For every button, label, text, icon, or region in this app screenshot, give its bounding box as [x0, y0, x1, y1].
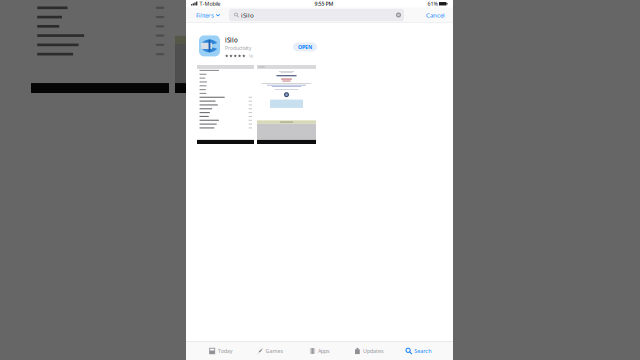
staticText: iSilo [225, 36, 238, 44]
staticText: 9:55 PM [314, 0, 333, 7]
staticText: Today [218, 347, 233, 355]
staticText: Filters [196, 11, 214, 19]
button[interactable]: Today [196, 342, 245, 360]
staticText: Updates [363, 347, 384, 355]
staticText: Search [414, 347, 431, 355]
button[interactable]: Apps [295, 342, 344, 360]
staticText: Apps [318, 347, 330, 355]
button[interactable]: Search [394, 342, 443, 360]
staticText: Productivity [225, 45, 251, 51]
button[interactable]: Clear search text [394, 10, 403, 19]
staticText: T-Mobile [199, 0, 220, 7]
button[interactable]: Games [245, 342, 295, 360]
button[interactable]: OPEN [293, 42, 317, 51]
staticText: 14 [248, 53, 252, 59]
staticText: Cancel [426, 11, 445, 19]
staticText: 61% [427, 0, 437, 7]
staticText: OPEN [298, 43, 312, 50]
button[interactable]: Updates [344, 342, 394, 360]
staticText: iSilo [241, 11, 254, 19]
button[interactable]: Cancel [416, 7, 453, 22]
button[interactable]: Filters [186, 7, 229, 22]
staticText: Games [266, 347, 284, 355]
